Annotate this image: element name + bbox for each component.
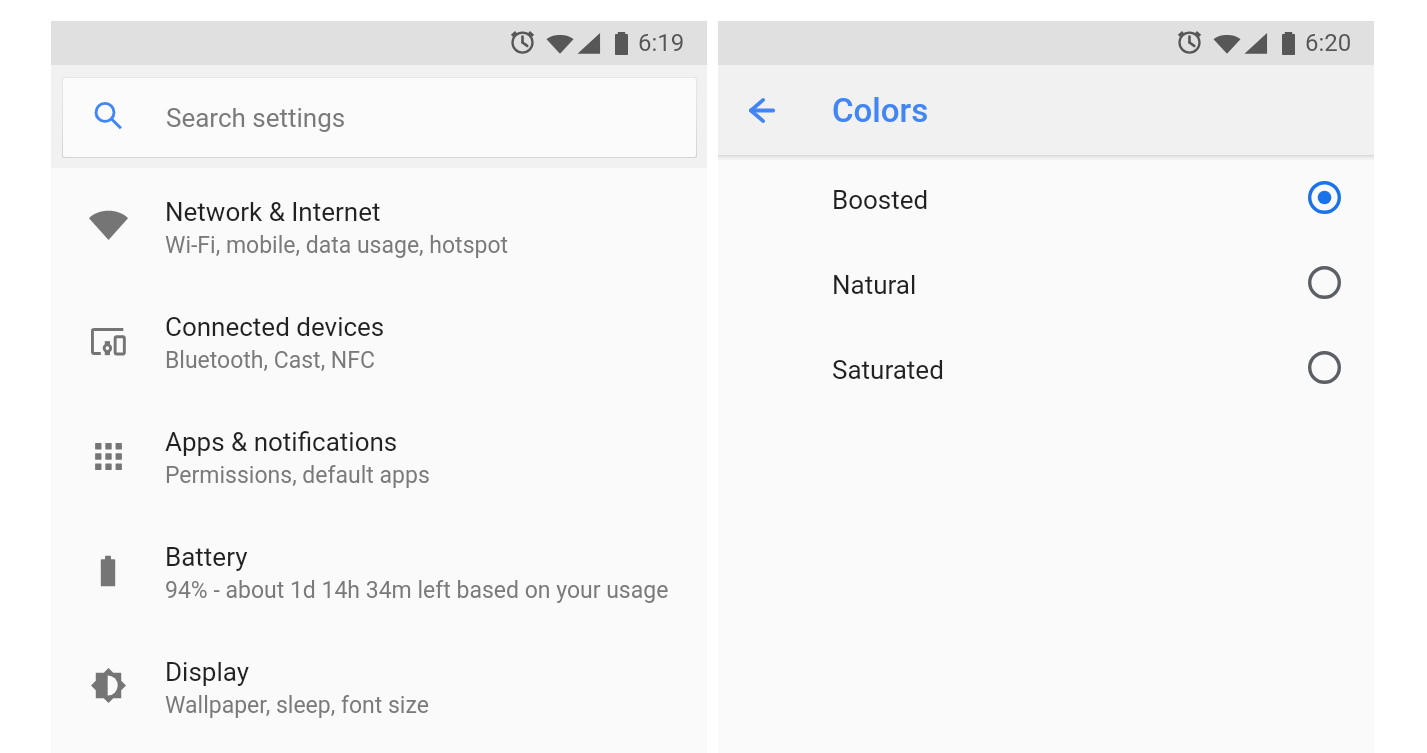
- button[interactable]: Natural: [718, 242, 1374, 327]
- staticText: Bluetooth, Cast, NFC: [165, 347, 375, 374]
- staticText: Search settings: [166, 103, 346, 133]
- staticText: Natural: [832, 270, 917, 300]
- button[interactable]: Network & Internet: [51, 170, 707, 285]
- button[interactable]: Connected devices: [51, 285, 707, 400]
- staticText: Wi-Fi, mobile, data usage, hotspot: [165, 232, 509, 259]
- staticText: Apps & notifications: [165, 427, 398, 457]
- staticText: Network & Internet: [165, 197, 381, 227]
- staticText: 6:19: [638, 29, 685, 57]
- staticText: 6:20: [1305, 29, 1352, 57]
- button[interactable]: Saturated: [718, 327, 1374, 412]
- staticText: Connected devices: [165, 312, 385, 342]
- staticText: Boosted: [832, 185, 929, 215]
- staticText: 94% - about 1d 14h 34m left based on you…: [165, 577, 669, 604]
- button[interactable]: Apps & notifications: [51, 400, 707, 515]
- button[interactable]: Back: [738, 86, 786, 134]
- staticText: Colors: [832, 91, 929, 130]
- staticText: Saturated: [832, 355, 944, 385]
- staticText: Wallpaper, sleep, font size: [165, 692, 429, 719]
- staticText: Battery: [165, 542, 248, 572]
- staticText: Permissions, default apps: [165, 462, 430, 489]
- staticText: Display: [165, 657, 249, 687]
- button[interactable]: Boosted: [718, 157, 1374, 242]
- button[interactable]: Battery: [51, 515, 707, 630]
- button[interactable]: Search settings: [63, 78, 696, 157]
- button[interactable]: Display: [51, 630, 707, 745]
